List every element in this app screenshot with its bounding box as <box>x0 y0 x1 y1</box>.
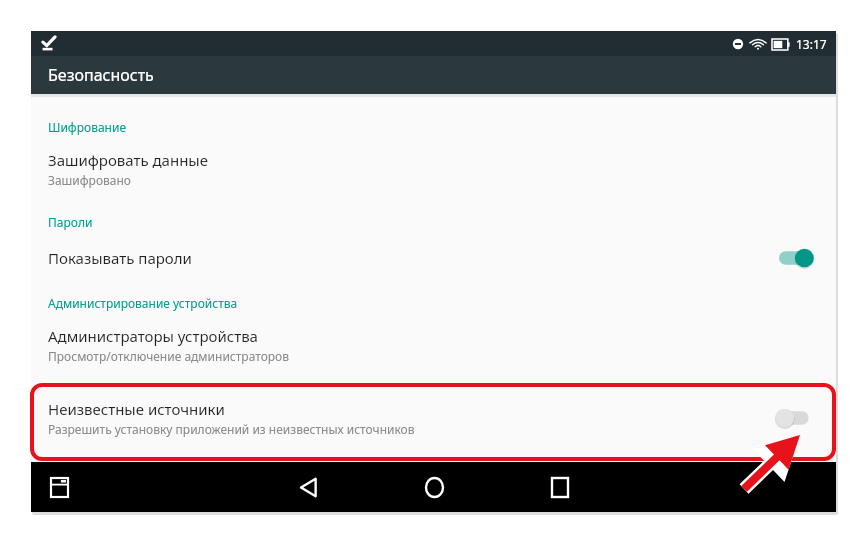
staticText: Разрешить установку приложений из неизве… <box>48 421 415 437</box>
button[interactable]: Администраторы устройства <box>31 324 836 366</box>
button[interactable]: Screenshot <box>39 467 79 507</box>
staticText: Показывать пароли <box>48 248 192 268</box>
button[interactable]: Recents <box>538 465 582 509</box>
button[interactable]: Зашифровать данные <box>31 148 836 190</box>
staticText: Зашифровано <box>48 172 131 188</box>
staticText: Пароли <box>48 214 93 230</box>
staticText: 13:17 <box>796 36 827 52</box>
button[interactable]: Toggle off <box>779 405 819 431</box>
button[interactable]: Показывать пароли <box>31 243 836 273</box>
button[interactable]: Home <box>412 465 456 509</box>
staticText: Неизвестные источники <box>48 399 225 419</box>
button[interactable]: Неизвестные источники <box>31 397 836 439</box>
staticText: Администраторы устройства <box>48 326 258 346</box>
staticText: Администрирование устройства <box>48 295 238 311</box>
staticText: Просмотр/отключение администраторов <box>48 348 289 364</box>
staticText: Шифрование <box>48 119 127 135</box>
staticText: Безопасность <box>48 64 154 86</box>
button[interactable]: Toggle on <box>779 245 819 271</box>
button[interactable]: Back <box>286 465 330 509</box>
staticText: Зашифровать данные <box>48 150 209 170</box>
